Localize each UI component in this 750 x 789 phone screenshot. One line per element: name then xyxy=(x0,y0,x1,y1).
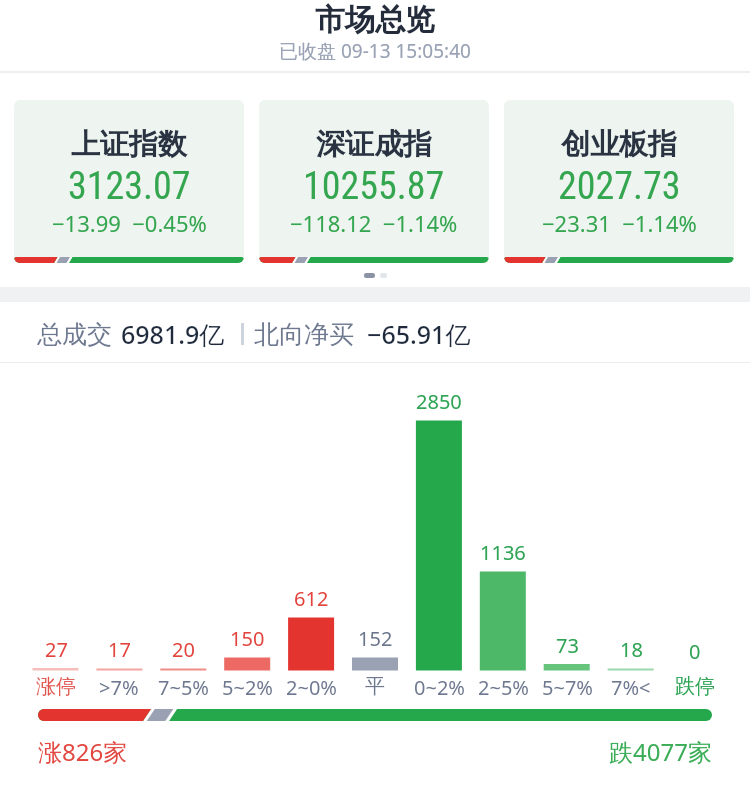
staticText: 北向净买 xyxy=(254,319,354,350)
staticText: 已收盘 09-13 15:05:40 xyxy=(279,38,471,64)
staticText: 总成交 xyxy=(37,319,112,350)
staticText: 创业板指 xyxy=(561,126,677,163)
button[interactable]: 总成交 xyxy=(37,317,471,351)
button[interactable]: 7%< xyxy=(599,674,663,701)
button[interactable]: 平 xyxy=(343,674,407,699)
button[interactable]: 7~5% xyxy=(151,674,215,701)
staticText: 20 xyxy=(172,636,195,663)
button[interactable]: 跌停 xyxy=(663,674,727,699)
staticText: 6981.9亿 xyxy=(121,317,225,351)
button[interactable]: 涨停 xyxy=(24,674,88,699)
staticText: 3123.07 xyxy=(68,164,191,209)
staticText: 18 xyxy=(620,636,643,663)
staticText: 0~2% xyxy=(414,674,465,701)
staticText: 上证指数 xyxy=(71,126,187,163)
button[interactable]: 2~5% xyxy=(471,674,535,701)
staticText: 深证成指 xyxy=(316,126,432,163)
staticText: 跌停 xyxy=(675,674,715,699)
button[interactable]: 2~0% xyxy=(279,674,343,701)
staticText: 2~0% xyxy=(286,674,337,701)
button[interactable]: 上证指数 xyxy=(14,100,244,263)
staticText: 1136 xyxy=(480,539,526,566)
staticText: 7%< xyxy=(611,674,651,701)
staticText: 涨826家 xyxy=(38,735,128,768)
staticText: 2850 xyxy=(416,388,462,415)
staticText: 0 xyxy=(689,638,701,665)
staticText: −13.99 −0.45% xyxy=(52,208,207,238)
button[interactable]: 5~2% xyxy=(215,674,279,701)
staticText: 5~7% xyxy=(542,674,593,701)
button[interactable]: 5~7% xyxy=(535,674,599,701)
staticText: 10255.87 xyxy=(303,164,445,209)
staticText: 平 xyxy=(365,674,385,699)
button[interactable]: 深证成指 xyxy=(259,100,489,263)
staticText: 27 xyxy=(45,636,68,663)
staticText: 73 xyxy=(556,632,579,659)
staticText: 152 xyxy=(358,625,393,652)
staticText: 612 xyxy=(294,585,329,612)
staticText: 7~5% xyxy=(158,674,209,701)
staticText: −65.91亿 xyxy=(367,317,471,351)
button[interactable]: >7% xyxy=(87,674,151,701)
staticText: 5~2% xyxy=(222,674,273,701)
staticText: 涨停 xyxy=(36,674,76,699)
staticText: 2~5% xyxy=(478,674,529,701)
button[interactable]: 创业板指 xyxy=(504,100,734,263)
staticText: 跌4077家 xyxy=(609,735,712,768)
staticText: 市场总览 xyxy=(315,1,435,39)
staticText: −118.12 −1.14% xyxy=(290,208,458,238)
staticText: 2027.73 xyxy=(558,164,681,209)
staticText: −23.31 −1.14% xyxy=(542,208,697,238)
button[interactable]: 0~2% xyxy=(407,674,471,701)
staticText: 17 xyxy=(108,636,131,663)
staticText: >7% xyxy=(99,674,139,701)
staticText: 150 xyxy=(230,625,265,652)
